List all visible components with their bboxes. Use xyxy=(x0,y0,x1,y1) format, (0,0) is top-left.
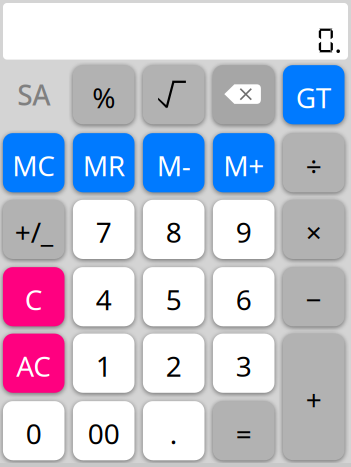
staticText: 6 xyxy=(236,281,252,318)
staticText: C xyxy=(25,281,43,318)
button[interactable]: 4 xyxy=(73,267,134,326)
staticText: − xyxy=(306,281,322,318)
button[interactable]: 0 xyxy=(3,401,64,460)
staticText: +/_ xyxy=(15,213,53,251)
button[interactable]: 9 xyxy=(213,200,274,259)
button[interactable]: SA xyxy=(3,65,64,124)
button[interactable]: AC xyxy=(3,334,64,393)
button[interactable]: C xyxy=(3,267,64,326)
button[interactable]: 2 xyxy=(143,334,204,393)
staticText: M+ xyxy=(223,147,264,184)
button[interactable]: MR xyxy=(73,133,134,192)
button[interactable]: GT xyxy=(283,65,344,124)
staticText: MR xyxy=(83,147,125,184)
staticText: = xyxy=(236,415,252,452)
button[interactable]: Backspace xyxy=(213,65,274,124)
button[interactable]: M+ xyxy=(213,133,274,192)
staticText: GT xyxy=(296,79,332,116)
button[interactable]: MC xyxy=(3,133,64,192)
staticText: SA xyxy=(17,76,50,113)
button[interactable]: Square root xyxy=(143,65,204,124)
button[interactable]: 3 xyxy=(213,334,274,393)
staticText: 9 xyxy=(236,213,252,251)
staticText: AC xyxy=(16,347,51,384)
staticText: × xyxy=(306,213,322,251)
staticText: 1 xyxy=(96,347,112,384)
staticText: 4 xyxy=(96,281,112,318)
button[interactable]: = xyxy=(213,401,274,460)
button[interactable]: 8 xyxy=(143,200,204,259)
staticText: % xyxy=(92,79,115,116)
staticText: 3 xyxy=(236,347,252,384)
staticText: 7 xyxy=(96,213,112,251)
button[interactable]: 1 xyxy=(73,334,134,393)
button[interactable]: − xyxy=(283,267,344,326)
button[interactable]: 00 xyxy=(73,401,134,460)
staticText: 0 xyxy=(26,415,42,452)
button[interactable]: +/_ xyxy=(3,200,64,259)
staticText: . xyxy=(170,415,178,452)
staticText: M- xyxy=(157,147,191,184)
button[interactable]: 6 xyxy=(213,267,274,326)
staticText: + xyxy=(306,381,322,418)
staticText: 00 xyxy=(88,415,120,452)
staticText: MC xyxy=(12,147,55,184)
button[interactable]: % xyxy=(73,65,134,124)
button[interactable]: + xyxy=(283,334,344,460)
button[interactable]: ÷ xyxy=(283,133,344,192)
button[interactable]: 5 xyxy=(143,267,204,326)
button[interactable]: . xyxy=(143,401,204,460)
staticText: 2 xyxy=(166,347,182,384)
button[interactable]: M- xyxy=(143,133,204,192)
button[interactable]: 7 xyxy=(73,200,134,259)
staticText: 8 xyxy=(166,213,182,251)
button[interactable]: × xyxy=(283,200,344,259)
staticText: 5 xyxy=(166,281,182,318)
staticText: ÷ xyxy=(306,147,322,184)
